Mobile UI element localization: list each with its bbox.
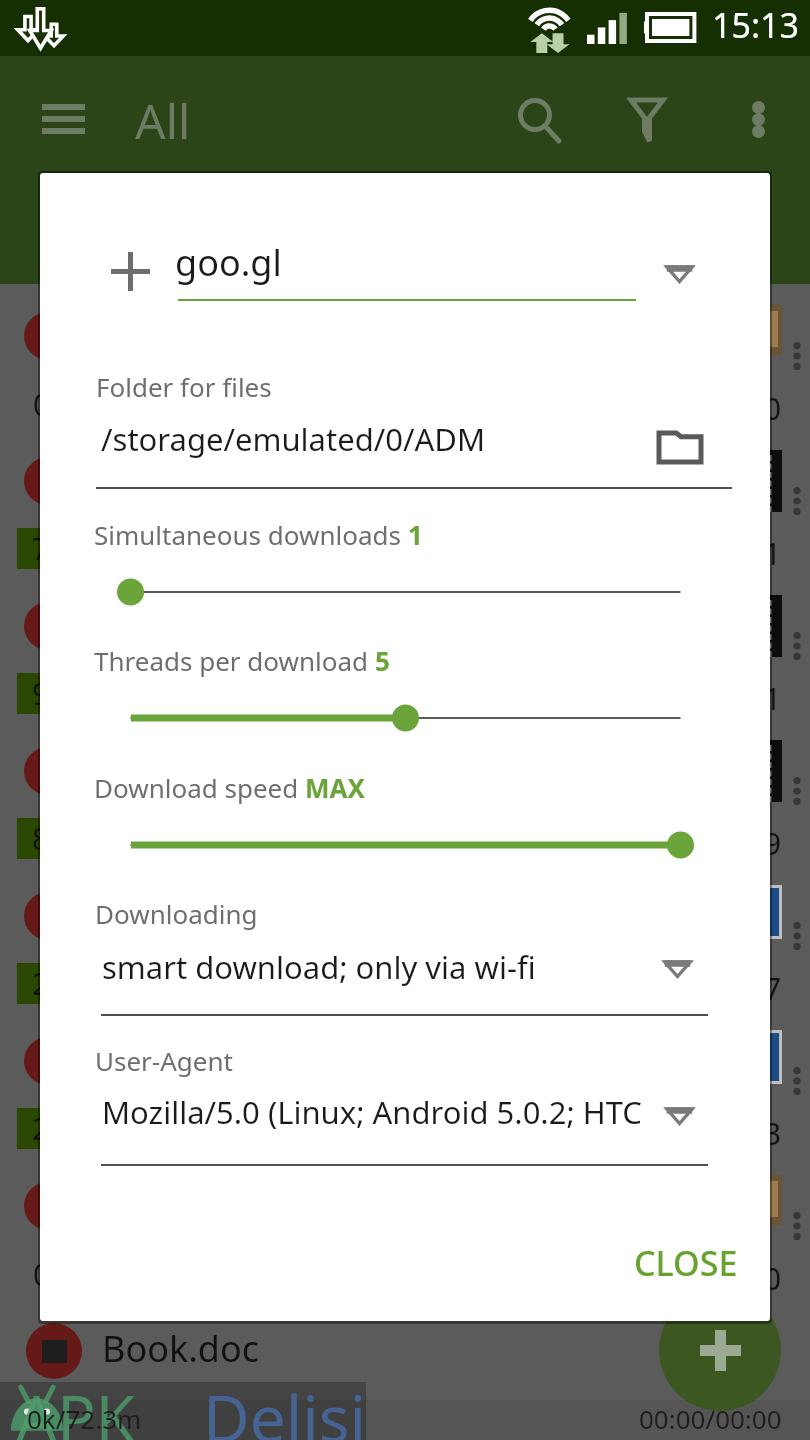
button[interactable]: Choose URL <box>655 255 703 293</box>
staticText: 2 <box>32 1108 50 1149</box>
staticText: 0 <box>764 388 782 429</box>
button[interactable]: Item options <box>784 771 810 811</box>
staticText: MAX <box>305 770 365 805</box>
button[interactable]: 2 <box>0 1009 810 1154</box>
button[interactable]: Item options <box>784 626 810 666</box>
button[interactable]: 0 <box>0 284 810 429</box>
staticText: 1 <box>764 678 782 719</box>
button[interactable]: Item options <box>784 916 810 956</box>
button[interactable]: 0 <box>0 1154 810 1299</box>
button[interactable]: Add new download <box>659 1289 781 1411</box>
staticText: 0 <box>764 1258 782 1299</box>
staticText: 5 <box>375 643 390 678</box>
staticText: Delisi <box>203 1374 367 1440</box>
staticText: Downloading <box>95 896 258 931</box>
button[interactable]: CLOSE <box>614 1226 758 1300</box>
staticText: 2 <box>32 963 50 1004</box>
staticText: Threads per download <box>94 643 375 678</box>
button[interactable]: Choose user agent <box>655 1097 703 1135</box>
staticText: 7 <box>764 968 782 1009</box>
staticText: 7 <box>32 528 50 569</box>
staticText: 00:00/00:00 <box>639 1401 782 1436</box>
staticText: Simultaneous downloads <box>94 517 408 552</box>
staticText: 9 <box>764 823 782 864</box>
button[interactable]: 8 <box>0 719 810 864</box>
staticText: smart download; only via wi-fi <box>102 946 536 988</box>
staticText: Mozilla/5.0 (Linux; Android 5.0.2; HTC O… <box>102 1091 645 1133</box>
button[interactable]: Item options <box>784 336 810 376</box>
staticText: 8 <box>32 818 50 859</box>
staticText: goo.gl <box>175 238 282 287</box>
staticText: /storage/emulated/0/ADM <box>101 418 486 460</box>
button[interactable]: Book.doc <box>0 1299 810 1400</box>
button[interactable]: More options <box>728 89 788 149</box>
button[interactable]: Item options <box>784 481 810 521</box>
staticText: 9 <box>32 673 50 714</box>
staticText: 0 <box>33 1254 51 1295</box>
button[interactable]: 7 <box>0 429 810 574</box>
button[interactable]: 9 <box>0 574 810 719</box>
staticText: APK <box>16 1374 136 1440</box>
staticText: Folder for files <box>96 369 272 404</box>
staticText: 15:13 <box>712 2 799 48</box>
staticText: Download speed <box>94 770 305 805</box>
button[interactable]: Choose folder <box>648 420 712 472</box>
staticText: User-Agent <box>95 1043 233 1078</box>
staticText: 0k/72.3m <box>27 1401 142 1436</box>
staticText: 1 <box>764 533 782 574</box>
staticText: CLOSE <box>634 1240 738 1286</box>
button[interactable]: Choose download mode <box>653 950 701 988</box>
staticText: 0 <box>33 384 51 425</box>
button[interactable]: Search <box>508 89 572 153</box>
button[interactable]: Filter <box>614 87 680 153</box>
button[interactable]: Item options <box>784 1206 810 1246</box>
staticText: Book.doc <box>102 1324 260 1373</box>
staticText: 3 <box>764 1113 782 1154</box>
staticText: 1 <box>408 517 423 552</box>
button[interactable]: Open navigation drawer <box>20 88 106 150</box>
staticText: All <box>135 88 191 153</box>
button[interactable]: Item options <box>784 1061 810 1101</box>
button[interactable]: 2 <box>0 864 810 1009</box>
